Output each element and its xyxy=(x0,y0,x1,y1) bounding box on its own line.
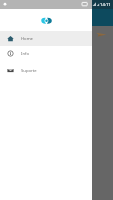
staticText: 14:11 xyxy=(100,2,111,8)
staticText: Info xyxy=(21,51,29,57)
button[interactable]: Suporte xyxy=(0,63,92,78)
button[interactable]: Home xyxy=(0,31,92,46)
staticText: Home xyxy=(21,36,33,42)
button[interactable]: Info xyxy=(0,46,92,61)
staticText: Suporte xyxy=(21,68,37,74)
